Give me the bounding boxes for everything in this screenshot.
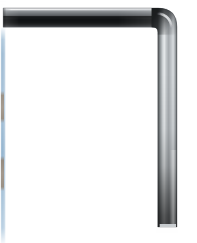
button[interactable]: Chrome L-shaped hex key product photo [0, 0, 197, 243]
